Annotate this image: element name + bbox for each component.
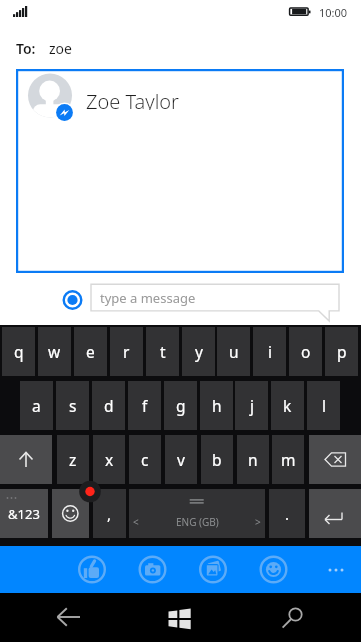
button[interactable]: l [307, 381, 340, 430]
button[interactable]: < [129, 489, 265, 538]
staticText: y [195, 341, 203, 362]
staticText: g [176, 395, 186, 416]
staticText: f [142, 395, 148, 416]
button[interactable] [309, 435, 361, 484]
button[interactable] [0, 435, 52, 484]
button[interactable]: u [217, 327, 250, 376]
button[interactable]: x [93, 435, 125, 484]
staticText: q [14, 341, 24, 362]
staticText: < [133, 515, 139, 529]
button[interactable]: zoe [49, 39, 109, 56]
button[interactable]: d [92, 381, 125, 430]
staticText: v [177, 449, 185, 470]
staticText: . [285, 504, 290, 524]
staticText: m [281, 449, 296, 470]
staticText: ENG (GB) [176, 515, 219, 529]
staticText: l [322, 395, 326, 416]
button[interactable]: w [38, 327, 71, 376]
button[interactable]: e [74, 327, 107, 376]
button[interactable] [199, 556, 227, 584]
button[interactable] [78, 556, 106, 584]
staticText: zoe [49, 39, 72, 56]
staticText: w [48, 341, 61, 362]
staticText: z [69, 449, 77, 470]
button[interactable] [322, 556, 350, 584]
button[interactable]: o [289, 327, 322, 376]
button[interactable]: s [56, 381, 89, 430]
button[interactable] [276, 598, 316, 636]
button[interactable]: c [129, 435, 161, 484]
staticText: 10:00 [319, 5, 348, 20]
staticText: r [123, 341, 130, 362]
button[interactable]: t [146, 327, 179, 376]
button[interactable] [260, 556, 288, 584]
staticText: h [212, 395, 222, 416]
button[interactable]: m [272, 435, 304, 484]
staticText: To: [16, 39, 36, 56]
staticText: k [283, 395, 292, 416]
staticText: u [229, 341, 239, 362]
button[interactable] [139, 556, 167, 584]
button[interactable]: &123 [0, 489, 48, 538]
button[interactable] [16, 69, 344, 273]
button[interactable]: Zoe Taylor [86, 88, 246, 110]
staticText: x [105, 449, 114, 470]
staticText: i [268, 341, 272, 362]
staticText: type a message [100, 289, 196, 306]
staticText: d [104, 395, 114, 416]
button[interactable]: . [269, 489, 305, 538]
staticText: Zoe Taylor [86, 88, 179, 110]
button[interactable] [309, 489, 361, 538]
button[interactable] [62, 289, 83, 310]
staticText: t [160, 341, 166, 362]
button[interactable]: r [110, 327, 143, 376]
staticText: j [250, 395, 254, 416]
staticText: s [69, 395, 77, 416]
staticText: o [301, 341, 311, 362]
staticText: , [107, 504, 112, 524]
staticText: &123 [8, 505, 40, 523]
button[interactable]: z [57, 435, 89, 484]
button[interactable] [52, 489, 89, 538]
button[interactable] [160, 598, 200, 636]
button[interactable]: h [200, 381, 233, 430]
staticText: c [141, 449, 149, 470]
button[interactable] [48, 598, 88, 636]
button[interactable]: i [253, 327, 286, 376]
staticText: a [32, 395, 41, 416]
button[interactable]: g [164, 381, 197, 430]
staticText: b [212, 449, 222, 470]
staticText: > [255, 515, 261, 529]
button[interactable]: q [2, 327, 35, 376]
staticText: p [337, 341, 347, 362]
staticText: e [86, 341, 95, 362]
button[interactable]: f [128, 381, 161, 430]
button[interactable]: y [182, 327, 215, 376]
button[interactable]: a [20, 381, 53, 430]
button[interactable]: k [271, 381, 304, 430]
button[interactable]: p [325, 327, 358, 376]
button[interactable]: , [93, 489, 126, 538]
button[interactable]: j [235, 381, 268, 430]
staticText: n [248, 449, 258, 470]
button[interactable]: b [201, 435, 233, 484]
button[interactable]: n [237, 435, 269, 484]
button[interactable]: type a message [100, 289, 230, 306]
button[interactable]: v [165, 435, 197, 484]
